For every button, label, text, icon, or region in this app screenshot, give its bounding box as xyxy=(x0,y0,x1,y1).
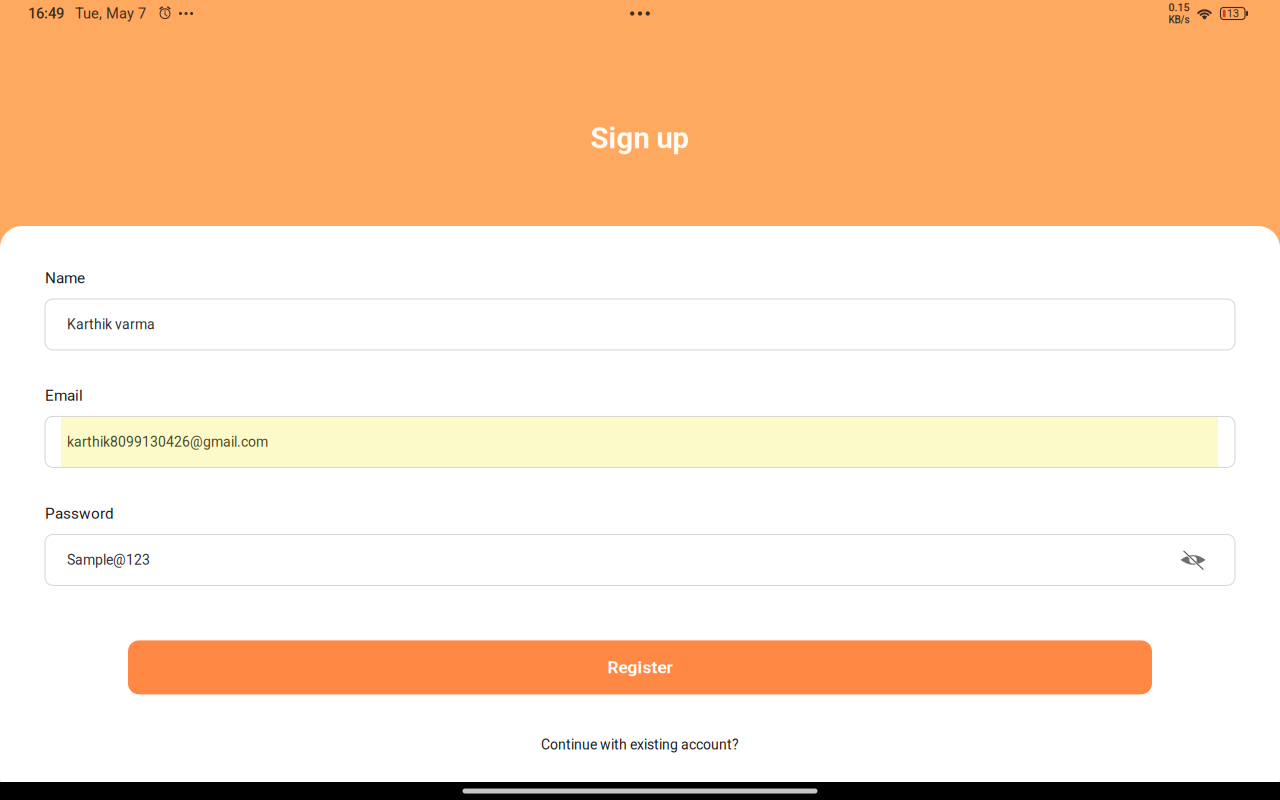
staticText: karthik8099130426@gmail.com xyxy=(67,434,268,450)
staticText: Sign up xyxy=(590,121,689,155)
button[interactable]: Register xyxy=(45,640,1235,694)
staticText: KB/s xyxy=(1168,14,1189,26)
button[interactable]: Sample@123 xyxy=(45,552,150,568)
staticText: Email xyxy=(45,386,83,404)
button[interactable]: karthik8099130426@gmail.com xyxy=(45,416,1235,467)
staticText: 0.15 xyxy=(1168,1,1189,14)
staticText: 13 xyxy=(1227,7,1239,20)
staticText: Continue with existing account? xyxy=(541,736,739,753)
staticText: 16:49 xyxy=(28,5,64,22)
staticText: Sample@123 xyxy=(67,552,150,568)
button[interactable]: Karthik varma xyxy=(45,299,1235,350)
staticText: Password xyxy=(45,504,114,522)
staticText: Name xyxy=(45,269,85,287)
button[interactable]: Hide password xyxy=(1180,550,1235,570)
button[interactable]: Continue with existing account? xyxy=(45,736,1235,753)
staticText: Karthik varma xyxy=(67,316,155,333)
staticText: Register xyxy=(607,657,672,677)
staticText: Tue, May 7 xyxy=(75,5,146,22)
